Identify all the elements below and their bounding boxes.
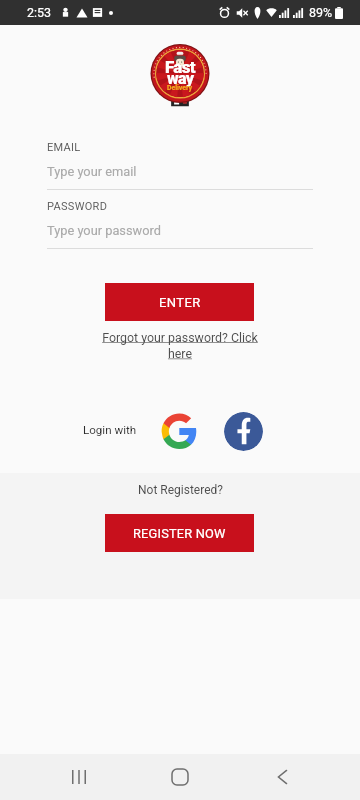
staticText: Not Registered? — [138, 483, 223, 497]
staticText: EMAIL — [47, 141, 81, 154]
staticText: Type your email — [47, 164, 137, 179]
staticText: PASSWORD — [47, 200, 108, 213]
staticText: way — [167, 69, 194, 88]
staticText: 89% — [309, 5, 333, 20]
staticText: Fast — [165, 57, 195, 77]
button[interactable]: ENTER — [105, 283, 254, 321]
button[interactable]: Login with Google — [160, 412, 197, 449]
staticText: ENTER — [159, 295, 201, 310]
button[interactable]: Login with Facebook — [224, 412, 263, 451]
staticText: Delivery — [167, 84, 193, 92]
staticText: REGISTER NOW — [133, 526, 226, 541]
button[interactable]: Back — [258, 754, 306, 800]
staticText: Type your password — [47, 223, 161, 238]
button[interactable]: Home — [156, 754, 204, 800]
staticText: 2:53 — [27, 5, 52, 20]
staticText: Login with — [83, 423, 137, 437]
button[interactable]: Recents — [55, 754, 103, 800]
staticText: Forgot your password? Click here — [99, 330, 261, 361]
button[interactable]: Forgot your password? Click here — [99, 330, 261, 361]
button[interactable]: REGISTER NOW — [105, 514, 254, 552]
